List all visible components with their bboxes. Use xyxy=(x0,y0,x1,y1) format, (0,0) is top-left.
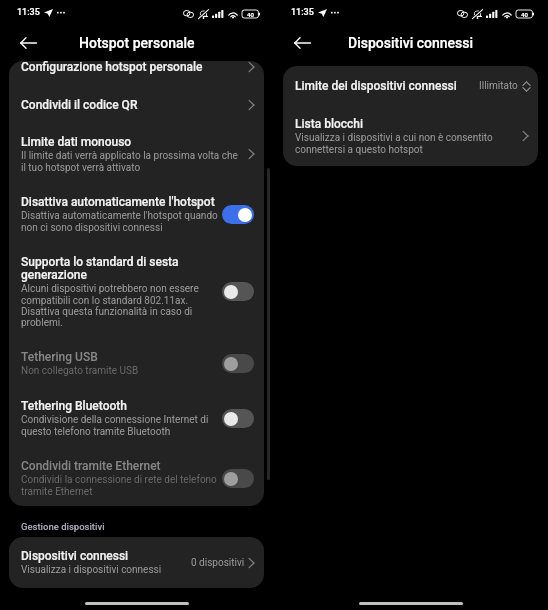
button[interactable]: Toggle xyxy=(222,469,254,488)
button[interactable]: Toggle xyxy=(222,205,254,224)
staticText: Lista blocchi xyxy=(295,117,364,131)
button[interactable]: Supporta lo standard di sesta generazion… xyxy=(9,244,264,339)
button[interactable]: Back xyxy=(288,29,316,57)
staticText: Condividi la connessione di rete del tel… xyxy=(21,474,222,497)
staticText: Visualizza i dispositivi a cui non è con… xyxy=(295,132,512,155)
staticText: Condividi il codice QR xyxy=(21,98,138,112)
staticText: Tethering Bluetooth xyxy=(21,399,127,413)
staticText: Hotspot personale xyxy=(79,35,195,51)
button[interactable]: Tethering Bluetooth xyxy=(9,388,264,448)
staticText: 40 xyxy=(521,11,528,18)
button[interactable]: Condividi il codice QR xyxy=(9,86,264,124)
staticText: Illimitato xyxy=(479,80,518,92)
button[interactable]: Toggle xyxy=(222,409,254,428)
staticText: Gestione dispositivi xyxy=(21,521,105,532)
button[interactable]: Dispositivi connessi xyxy=(9,537,264,588)
staticText: Supporta lo standard di sesta generazion… xyxy=(21,255,222,282)
staticText: Tethering USB xyxy=(21,350,98,364)
staticText: 0 dispositivi xyxy=(191,557,245,569)
button[interactable]: Limite dati monouso xyxy=(9,124,264,184)
staticText: Non collegato tramite USB xyxy=(21,365,139,377)
staticText: Dispositivi connessi xyxy=(21,549,129,563)
staticText: Configurazione hotspot personale xyxy=(21,61,203,74)
staticText: Condividi tramite Ethernet xyxy=(21,459,161,473)
staticText: 11:35 xyxy=(291,7,314,18)
button[interactable]: Back xyxy=(14,29,42,57)
button[interactable]: Toggle xyxy=(222,354,254,373)
staticText: Alcuni dispositivi potrebbero non essere… xyxy=(21,283,222,328)
staticText: Limite dati monouso xyxy=(21,135,132,149)
staticText: Disattiva automaticamente l'hotspot quan… xyxy=(21,210,222,233)
staticText: Condivisione della connessione Internet … xyxy=(21,414,222,437)
staticText: Il limite dati verrà applicato la prossi… xyxy=(21,150,238,173)
staticText: Disattiva automaticamente l'hotspot xyxy=(21,195,215,209)
button[interactable]: Lista blocchi xyxy=(283,106,538,166)
button[interactable]: Condividi tramite Ethernet xyxy=(9,448,264,506)
button[interactable]: Tethering USB xyxy=(9,339,264,388)
staticText: 11:35 xyxy=(17,7,40,18)
staticText: 40 xyxy=(247,11,254,18)
staticText: Dispositivi connessi xyxy=(348,35,474,51)
button[interactable]: Disattiva automaticamente l'hotspot xyxy=(9,184,264,244)
staticText: Visualizza i dispositivi connessi xyxy=(21,564,162,576)
button[interactable]: Toggle xyxy=(222,282,254,301)
staticText: Limite dei dispositivi connessi xyxy=(295,79,457,93)
button[interactable]: Limite dei dispositivi connessi xyxy=(283,66,538,106)
button[interactable]: Configurazione hotspot personale xyxy=(9,61,264,86)
